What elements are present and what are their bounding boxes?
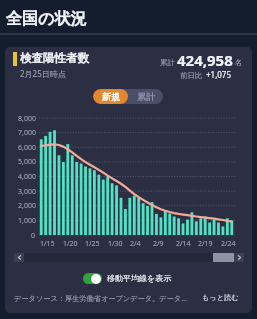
staticText: 3,000 [18, 187, 36, 197]
staticText: データソース：厚生労働省オープンデータ。データ… [14, 293, 187, 303]
staticText: 全国の状況 [6, 9, 87, 29]
button[interactable]: 新規 [93, 89, 128, 104]
staticText: 名 [235, 58, 243, 67]
staticText: +1,075 [206, 69, 232, 80]
staticText: 7,000 [18, 128, 36, 138]
staticText: 2,000 [18, 201, 36, 211]
staticText: 1,000 [18, 216, 36, 226]
staticText: 2/14 [176, 239, 191, 249]
staticText: 移動平均線を表示 [107, 273, 172, 283]
staticText: 累計 [137, 91, 155, 102]
staticText: 8,000 [18, 114, 36, 124]
staticText: 検査陽性者数 [20, 51, 89, 65]
staticText: 新規 [102, 91, 120, 102]
button[interactable]: Scroll right [234, 253, 244, 262]
staticText: 6,000 [18, 143, 36, 153]
staticText: 424,958 [177, 50, 233, 70]
staticText: 1/25 [85, 239, 100, 249]
staticText: 2/9 [153, 239, 164, 249]
staticText: 4,000 [18, 172, 36, 182]
staticText: 1/20 [63, 239, 78, 249]
staticText: 2月25日時点 [20, 68, 66, 79]
button[interactable]: Scroll left [14, 253, 24, 262]
staticText: 前日比 [180, 71, 203, 80]
staticText: 1/15 [40, 239, 55, 249]
staticText: 2/19 [198, 239, 213, 249]
staticText: 2/4 [130, 239, 141, 249]
button[interactable]: 全国の状況 [0, 0, 257, 32]
staticText: 累計 [160, 58, 175, 67]
button[interactable]: 累計 [128, 89, 163, 104]
staticText: 2/24 [221, 239, 236, 249]
button[interactable]: 移動平均線を表示 [83, 271, 172, 285]
staticText: 5,000 [18, 157, 36, 167]
staticText: 0 [31, 231, 36, 241]
button[interactable]: もっと読む [202, 293, 239, 302]
staticText: 1/30 [108, 239, 123, 249]
